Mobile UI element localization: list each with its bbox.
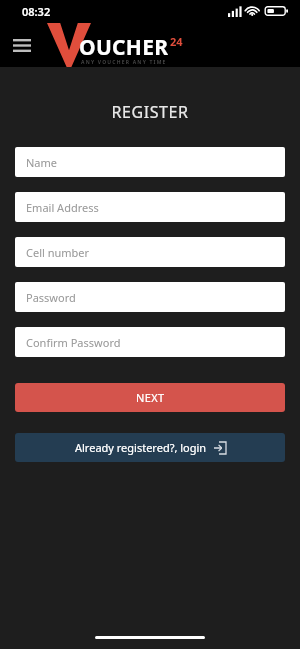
button[interactable]: Cell number <box>15 237 285 267</box>
button[interactable]: Email Address <box>15 192 285 222</box>
button[interactable]: NEXT <box>15 383 285 412</box>
staticText: Confirm Password <box>26 335 121 350</box>
button[interactable]: Open navigation menu <box>5 30 39 60</box>
staticText: NEXT <box>136 390 165 405</box>
staticText: Cell number <box>26 245 90 260</box>
staticText: Email Address <box>26 200 99 215</box>
button[interactable]: Already registered?, login <box>15 433 285 462</box>
staticText: 24 <box>170 34 183 49</box>
staticText: Password <box>26 290 76 305</box>
button[interactable]: Name <box>15 147 285 177</box>
staticText: 08:32 <box>22 4 51 19</box>
staticText: ANY VOUCHER ANY TIME <box>81 59 167 66</box>
staticText: OUCHER <box>79 33 169 62</box>
button[interactable]: Confirm Password <box>15 327 285 357</box>
staticText: Name <box>26 155 58 170</box>
staticText: Already registered?, login <box>75 440 207 455</box>
staticText: REGISTER <box>0 101 300 123</box>
button[interactable]: Password <box>15 282 285 312</box>
